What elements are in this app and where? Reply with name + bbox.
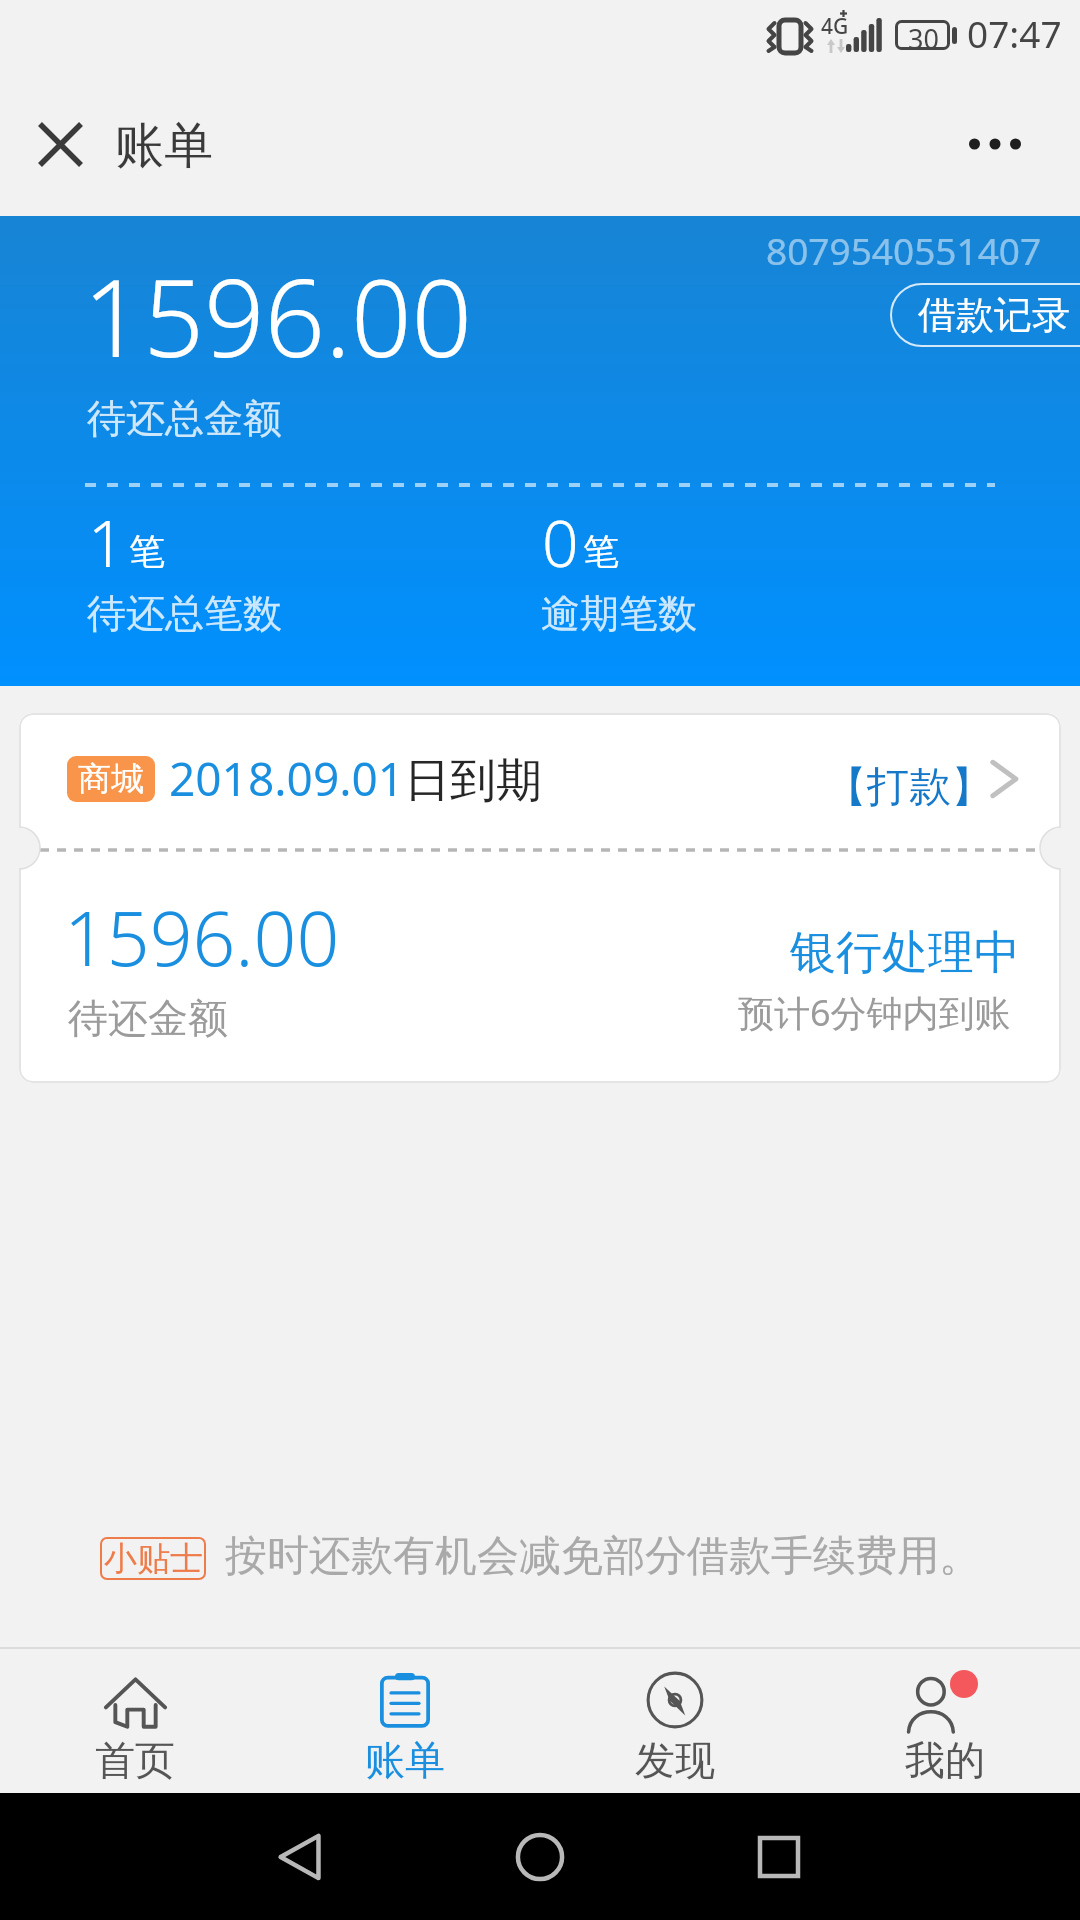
button[interactable]: 商城 [19, 713, 1061, 849]
button[interactable]: 我的 [810, 1647, 1080, 1793]
button[interactable]: 发现 [540, 1647, 810, 1793]
staticText: 30 [908, 20, 939, 57]
staticText: 借款记录 [918, 291, 1070, 339]
button[interactable]: 借款记录 [890, 283, 1080, 347]
staticText: 首页 [95, 1735, 175, 1785]
staticText: 预计6分钟内到账 [738, 988, 1011, 1037]
staticText: 07:47 [967, 8, 1062, 58]
button[interactable]: Home [475, 1793, 605, 1920]
staticText: 我的 [905, 1735, 985, 1785]
staticText: 逾期笔数 [541, 589, 697, 638]
staticText: 银行处理中 [790, 924, 1020, 982]
staticText: 待还总笔数 [87, 589, 282, 638]
staticText: 账单 [115, 115, 213, 177]
staticText: 待还总金额 [87, 394, 282, 443]
staticText: 1 [88, 499, 125, 586]
staticText: 4G [821, 12, 849, 41]
button[interactable]: 账单 [270, 1647, 540, 1793]
staticText: 8079540551407 [766, 225, 1042, 275]
staticText: 笔 [583, 529, 619, 574]
staticText: 1596.00 [83, 244, 473, 388]
staticText: 发现 [635, 1735, 715, 1785]
staticText: 小贴士 [104, 1538, 203, 1580]
button[interactable]: More options [925, 72, 1065, 216]
button[interactable]: Close [18, 72, 102, 216]
button[interactable]: Recents [714, 1793, 844, 1920]
staticText: 待还金额 [68, 993, 228, 1043]
staticText: 账单 [365, 1735, 445, 1785]
staticText: 0 [542, 499, 579, 586]
staticText: 商城 [78, 758, 144, 800]
staticText: 按时还款有机会减免部分借款手续费用。 [225, 1530, 981, 1583]
button[interactable]: 首页 [0, 1647, 270, 1793]
button[interactable]: Back [235, 1793, 365, 1920]
staticText: 1596.00 [64, 886, 340, 988]
staticText: 2018.09.01日到期 [169, 747, 543, 810]
button[interactable] [19, 713, 1061, 1083]
staticText: 【打款】 [825, 761, 993, 814]
staticText: 笔 [129, 529, 165, 574]
